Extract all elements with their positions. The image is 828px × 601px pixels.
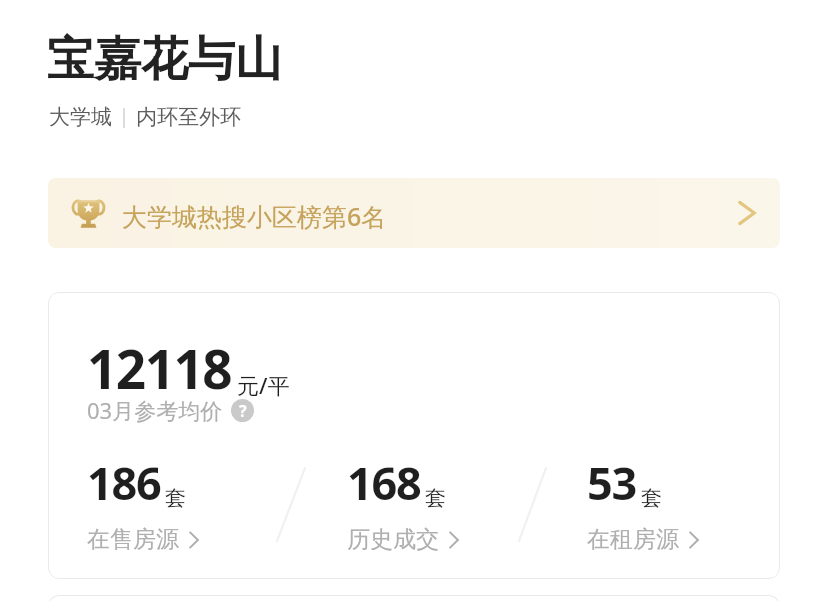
- staticText: 12118: [87, 332, 232, 404]
- staticText: 186: [87, 452, 161, 513]
- staticText: ?: [239, 400, 247, 422]
- staticText: 53: [587, 452, 637, 513]
- staticText: 历史成交: [347, 525, 439, 554]
- staticText: 套: [165, 485, 186, 511]
- staticText: 套: [425, 485, 446, 511]
- staticText: 内环至外环: [136, 104, 241, 130]
- button[interactable]: 53: [587, 452, 701, 542]
- staticText: 宝嘉花与山: [47, 30, 282, 89]
- button[interactable]: 168: [347, 452, 461, 542]
- staticText: 168: [347, 452, 421, 513]
- staticText: 大学城热搜小区榜第6名: [122, 199, 387, 233]
- staticText: 在售房源: [87, 525, 179, 554]
- staticText: 元/平: [237, 370, 290, 400]
- staticText: 大学城: [49, 104, 112, 130]
- button[interactable]: 榜单奖杯: [48, 178, 780, 248]
- staticText: 套: [641, 485, 662, 511]
- staticText: 03月参考均价: [87, 395, 223, 425]
- other: 榜单奖杯: [72, 197, 105, 230]
- button[interactable]: 186: [87, 452, 201, 542]
- staticText: 在租房源: [587, 525, 679, 554]
- other: 帮助说明: [231, 399, 254, 422]
